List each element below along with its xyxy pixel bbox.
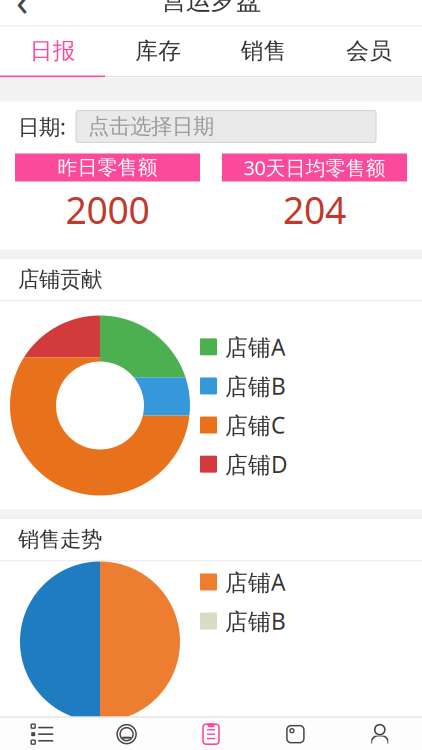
staticText: 营运罗盘 xyxy=(161,0,261,16)
button[interactable]: 个人中心 xyxy=(338,716,422,750)
staticText: 点击选择日期 xyxy=(88,113,214,140)
staticText: 204 xyxy=(283,185,346,234)
button[interactable]: 库存 xyxy=(105,26,211,75)
button[interactable]: 昨日零售额 xyxy=(15,153,200,181)
staticText: 库存 xyxy=(135,37,181,65)
button[interactable]: 销售 xyxy=(211,26,316,75)
button[interactable]: 消息中心 xyxy=(84,716,169,750)
button[interactable]: 点击选择日期 xyxy=(76,110,376,142)
button[interactable]: 会员服务 xyxy=(253,716,338,750)
staticText: 店铺C xyxy=(225,410,285,440)
button[interactable]: 日报 xyxy=(0,26,105,75)
button[interactable]: 进货频道 xyxy=(0,716,84,750)
staticText: 销售走势 xyxy=(18,526,102,553)
staticText: 30天日均零售额 xyxy=(243,154,385,181)
staticText: 店铺D xyxy=(225,449,288,479)
staticText: 会员 xyxy=(346,37,392,65)
staticText: 昨日零售额 xyxy=(57,155,157,180)
button[interactable]: 30天日均零售额 xyxy=(222,153,407,181)
staticText: 店铺贡献 xyxy=(18,266,102,293)
staticText: 销售 xyxy=(241,37,287,65)
staticText: 店铺B xyxy=(225,606,286,636)
staticText: 店铺B xyxy=(225,371,286,401)
button[interactable]: 营运罗盘 xyxy=(169,716,253,750)
staticText: 店铺A xyxy=(225,567,285,597)
staticText: 店铺A xyxy=(225,332,285,362)
staticText: ‹ xyxy=(16,0,28,27)
button[interactable]: 会员 xyxy=(316,26,422,75)
button[interactable]: Back xyxy=(0,0,44,22)
staticText: 2000 xyxy=(65,185,149,234)
staticText: 日期: xyxy=(18,112,66,141)
staticText: 日报 xyxy=(30,37,76,65)
